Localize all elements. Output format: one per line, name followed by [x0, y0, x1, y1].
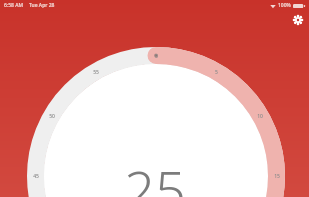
staticText: 45: [33, 173, 39, 180]
staticText: 55: [93, 69, 99, 76]
staticText: 10: [257, 113, 263, 120]
staticText: 6:58 AM: [4, 2, 24, 9]
staticText: 100%: [278, 2, 291, 9]
staticText: 50: [49, 113, 55, 120]
button[interactable]: Settings: [289, 11, 307, 29]
staticText: 25: [124, 152, 186, 197]
staticText: 5: [215, 69, 218, 76]
staticText: Tue Apr 28: [29, 2, 55, 9]
staticText: 0: [155, 53, 158, 60]
staticText: 15: [274, 173, 280, 180]
